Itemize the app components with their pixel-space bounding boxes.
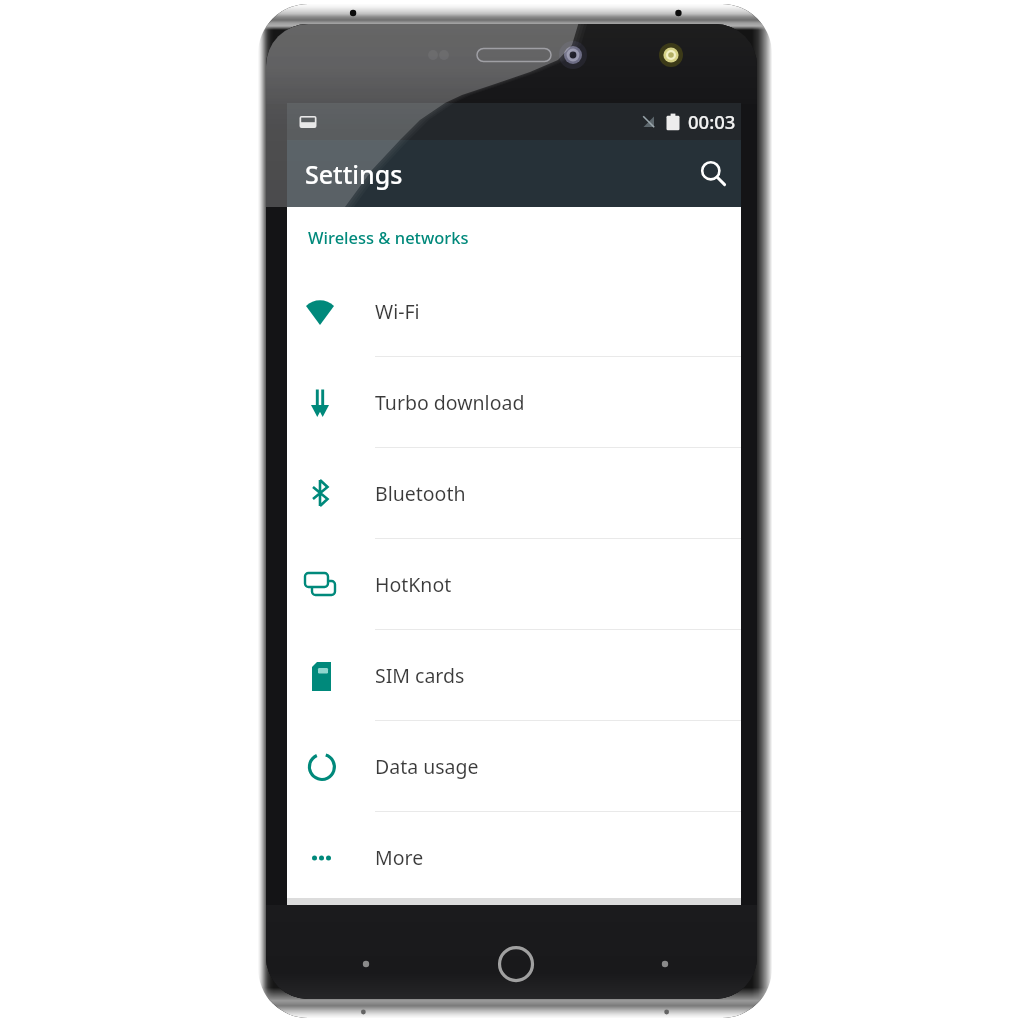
staticText: HotKnot [375,571,452,598]
button[interactable]: Search [689,149,739,199]
button[interactable]: Screenshot notification [296,110,320,134]
staticText: 00:03 [688,109,736,134]
staticText: Bluetooth [375,480,466,507]
button[interactable]: SIM cards [287,630,741,721]
staticText: Wi-Fi [375,298,420,325]
staticText: SIM cards [375,662,465,689]
button[interactable]: Turbo download [287,357,741,448]
staticText: Data usage [375,753,479,780]
button[interactable]: Home [488,932,540,984]
button[interactable]: More [287,812,741,903]
staticText: Settings [305,157,403,191]
button[interactable]: Data usage [287,721,741,812]
staticText: Turbo download [375,389,525,416]
staticText: Wireless & networks [308,226,469,248]
button[interactable]: Wi-Fi [287,266,741,357]
button[interactable]: Bluetooth [287,448,741,539]
staticText: More [375,844,424,871]
button[interactable]: HotKnot [287,539,741,630]
